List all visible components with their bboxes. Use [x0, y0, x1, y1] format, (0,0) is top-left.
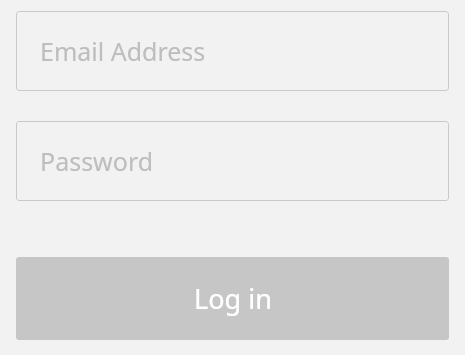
staticText: Log in [194, 280, 272, 317]
staticText: Password [40, 144, 154, 178]
button[interactable]: Email Address [16, 11, 449, 91]
button[interactable]: Password [16, 121, 449, 201]
staticText: Email Address [40, 34, 206, 68]
button[interactable]: Log in [16, 257, 449, 340]
